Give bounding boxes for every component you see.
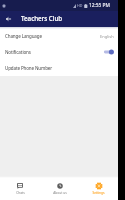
staticText: English: [100, 34, 114, 39]
staticText: HD: [77, 3, 83, 8]
staticText: Chats: [16, 191, 25, 195]
staticText: Teachers Club: [21, 14, 63, 22]
button[interactable]: Update Phone Number: [0, 60, 118, 76]
staticText: About us: [53, 191, 67, 195]
staticText: Notifications: [5, 49, 31, 55]
button[interactable]: Back: [0, 11, 16, 27]
staticText: Update Phone Number: [5, 65, 53, 71]
button[interactable]: About us: [40, 178, 79, 200]
button[interactable]: Chats: [0, 178, 40, 200]
button[interactable]: Change Language: [0, 28, 118, 44]
staticText: 12:55 PM: [89, 2, 110, 9]
staticText: Change Language: [5, 33, 42, 39]
button[interactable]: Notifications: [0, 44, 118, 60]
staticText: Settings: [92, 191, 105, 195]
button[interactable]: Settings: [79, 178, 118, 200]
